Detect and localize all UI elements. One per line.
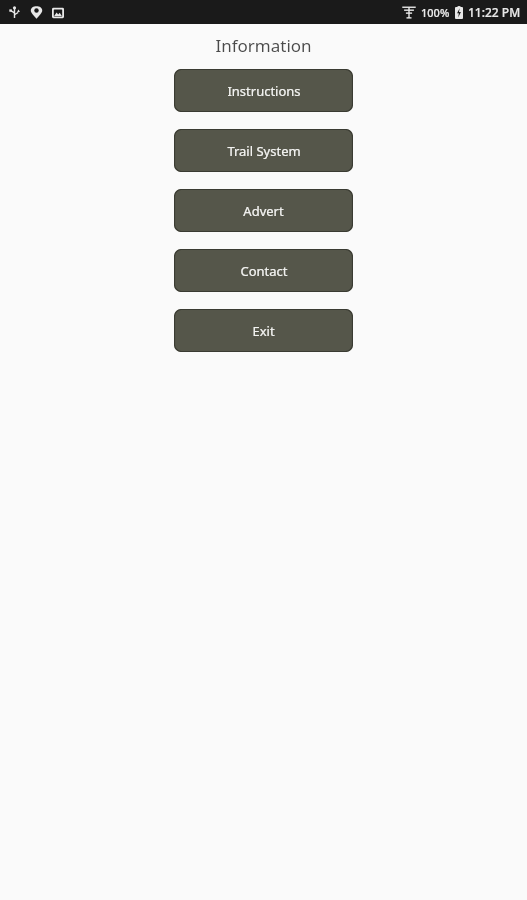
- staticText: Contact: [240, 262, 288, 280]
- button[interactable]: Exit: [174, 309, 353, 352]
- button[interactable]: Advert: [174, 189, 353, 232]
- button[interactable]: Instructions: [174, 69, 353, 112]
- button[interactable]: Trail System: [174, 129, 353, 172]
- staticText: 100%: [421, 5, 450, 20]
- other: Screenshot captured: [52, 7, 64, 19]
- staticText: Instructions: [227, 82, 301, 100]
- other: Wi-Fi: [402, 5, 416, 19]
- staticText: 11:22 PM: [468, 4, 521, 20]
- staticText: Advert: [243, 202, 284, 220]
- staticText: Exit: [252, 322, 275, 340]
- staticText: Trail System: [227, 142, 301, 160]
- other: Battery full, charging: [455, 6, 463, 19]
- other: USB connected: [8, 6, 21, 19]
- button[interactable]: Contact: [174, 249, 353, 292]
- staticText: Information: [0, 34, 527, 57]
- other: Location: [30, 6, 43, 19]
